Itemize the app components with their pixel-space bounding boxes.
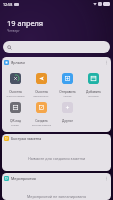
button[interactable]: Добавить: [80, 73, 106, 98]
staticText: Мероприятия: [11, 176, 36, 181]
staticText: Безопасность: [33, 95, 49, 98]
staticText: Контакты: [88, 95, 99, 98]
staticText: Другое: [62, 119, 73, 123]
button[interactable]: QR-код: [2, 102, 28, 127]
staticText: 12:58: [3, 2, 13, 7]
staticText: Нажмите для создания заметки: [28, 156, 86, 161]
button[interactable]: Отправить: [54, 73, 80, 98]
staticText: Ярлыки: [11, 60, 25, 65]
button[interactable]: Создать: [28, 102, 54, 127]
staticText: 19 апреля: [7, 18, 44, 28]
button[interactable]: Другое: [54, 102, 80, 124]
staticText: Быстрая заметка: [11, 136, 42, 141]
button[interactable]: Быстрая заметка: [2, 134, 111, 171]
staticText: Сканер: [11, 124, 19, 127]
button[interactable]: Очистка: [28, 73, 54, 98]
button[interactable]: Поиск: [3, 41, 110, 53]
staticText: Отправить: [59, 90, 76, 94]
staticText: Четверг: [7, 28, 20, 32]
button[interactable]: Очистка: [2, 73, 28, 98]
staticText: Добавить: [86, 90, 101, 94]
staticText: MiDrop: [63, 95, 72, 98]
button[interactable]: Ещё: [103, 59, 109, 65]
button[interactable]: Ещё: [103, 175, 109, 181]
staticText: Создать: [35, 119, 48, 123]
staticText: Очистка памяти: [6, 95, 25, 98]
staticText: Очистка: [9, 90, 22, 94]
staticText: Мероприятий не запланировано: [27, 194, 87, 199]
staticText: Очистка: [35, 90, 48, 94]
staticText: Быстрая заметка: [32, 124, 51, 127]
staticText: QR-код: [10, 119, 21, 123]
button[interactable]: Мероприятия: [2, 173, 111, 200]
